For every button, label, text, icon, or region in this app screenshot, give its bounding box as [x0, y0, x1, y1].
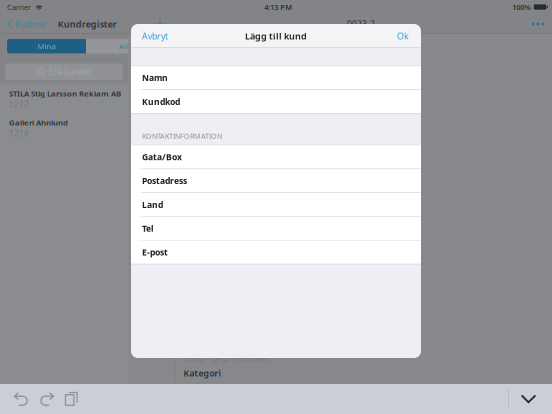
button[interactable]: Gata/Box	[131, 145, 421, 169]
button[interactable]: Undo	[9, 384, 34, 414]
button[interactable]: Namn	[131, 66, 421, 89]
staticText: Galleri Ahnlund	[9, 117, 68, 128]
staticText: Avbryt	[142, 30, 168, 42]
staticText: Kundregister	[58, 18, 117, 30]
staticText: Postadress	[142, 175, 187, 187]
button[interactable]: Hide keyboard	[509, 384, 548, 414]
staticText: Rutiner	[15, 18, 47, 30]
staticText: E-post	[142, 246, 168, 258]
staticText: 0023-2	[347, 18, 375, 30]
button[interactable]: Rutiner	[0, 14, 47, 34]
button[interactable]: Avbryt	[131, 24, 168, 48]
staticText: 1217	[9, 99, 29, 110]
staticText: Sök kunder	[48, 66, 91, 77]
button[interactable]: Postadress	[131, 169, 421, 192]
button[interactable]: Redo	[34, 384, 59, 414]
staticText: Mina	[37, 41, 55, 51]
button[interactable]: Add	[150, 14, 170, 34]
button[interactable]: Paste	[59, 384, 84, 414]
button[interactable]: Alla	[86, 39, 165, 53]
button[interactable]: E-post	[131, 241, 421, 264]
staticText: 7000 – Lego Produkter	[184, 353, 271, 364]
button[interactable]: Land	[131, 193, 421, 216]
button[interactable]: Mina	[7, 39, 86, 53]
staticText: 1218	[9, 128, 29, 139]
button[interactable]: Tel	[131, 217, 421, 240]
button[interactable]: Ok	[397, 24, 421, 48]
staticText: Kundkod	[142, 96, 180, 107]
staticText: Carrier	[7, 2, 31, 12]
staticText: Alla	[119, 41, 132, 51]
staticText: KONTAKTINFORMATION	[142, 131, 222, 141]
staticText: Ok	[397, 30, 409, 42]
staticText: 4:13 PM	[264, 2, 292, 12]
button[interactable]: STILA Stig Larsson Reklam AB	[0, 84, 128, 113]
staticText: Land	[142, 199, 163, 210]
button[interactable]: Kundkod	[131, 90, 421, 113]
button[interactable]: More	[529, 14, 547, 34]
staticText: Tel	[142, 223, 154, 234]
staticText: Gata/Box	[142, 151, 182, 163]
staticText: Namn	[142, 72, 168, 84]
staticText: Kategori	[184, 367, 221, 379]
button[interactable]: Galleri Ahnlund	[0, 113, 128, 142]
staticText: 100%	[512, 2, 531, 12]
staticText: STILA Stig Larsson Reklam AB	[9, 88, 121, 99]
staticText: Lägg till kund	[245, 30, 307, 42]
